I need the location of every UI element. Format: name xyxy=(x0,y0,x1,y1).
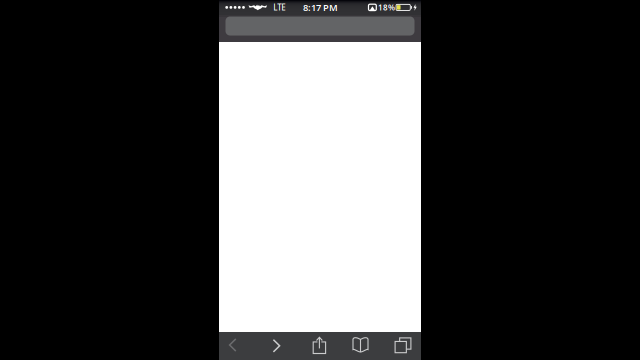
button[interactable]: Back xyxy=(213,331,253,359)
button[interactable] xyxy=(225,16,414,35)
staticText: LTE xyxy=(273,2,285,13)
staticText: 8:17 PM xyxy=(303,1,338,14)
button[interactable]: Bookmarks xyxy=(340,331,380,359)
button[interactable]: Tabs xyxy=(383,331,423,359)
staticText: 18% xyxy=(378,2,395,13)
button[interactable]: Share xyxy=(299,331,339,359)
button[interactable]: Forward xyxy=(256,332,296,360)
